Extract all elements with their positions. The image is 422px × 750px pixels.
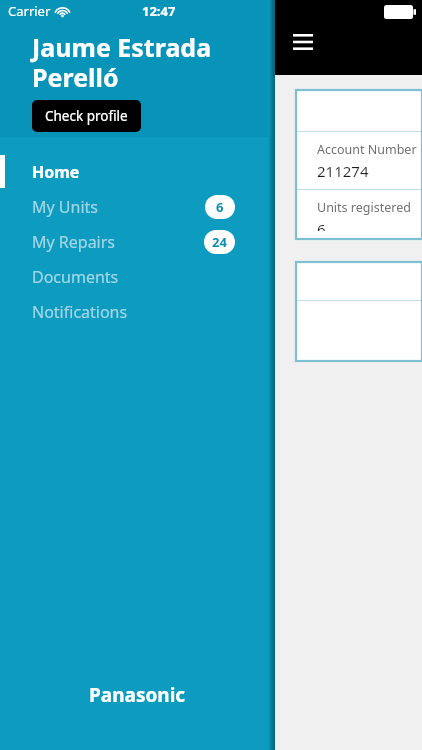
button[interactable]: Documents <box>0 259 275 294</box>
staticText: Home <box>32 161 80 183</box>
button[interactable]: My Units <box>0 189 275 224</box>
staticText: 6 <box>317 219 326 231</box>
staticText: Documents <box>32 266 119 288</box>
button[interactable]: Open navigation menu <box>283 22 323 62</box>
staticText: Panasonic <box>89 682 186 708</box>
staticText: Check profile <box>45 107 128 125</box>
button[interactable]: Check profile <box>32 100 141 132</box>
staticText: 6 <box>216 198 224 216</box>
staticText: 211274 <box>317 161 369 181</box>
staticText: Carrier <box>8 2 51 20</box>
staticText: My Repairs <box>32 231 116 253</box>
staticText: My Units <box>32 196 98 218</box>
staticText: Jaume Estrada Perelló <box>32 30 265 94</box>
staticText: 12:47 <box>142 2 176 20</box>
button[interactable]: My Repairs <box>0 224 275 259</box>
staticText: 24 <box>212 233 227 251</box>
button[interactable]: Home <box>0 154 275 189</box>
staticText: Units registered <box>317 199 411 216</box>
staticText: Notifications <box>32 301 128 323</box>
button[interactable]: Notifications <box>0 294 275 329</box>
staticText: Account Number <box>317 141 417 158</box>
